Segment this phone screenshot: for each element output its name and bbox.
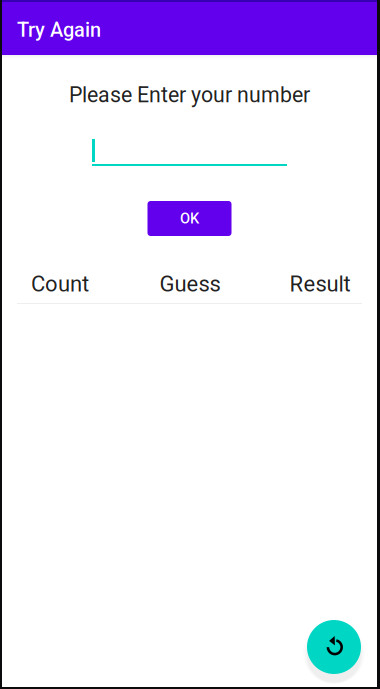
staticText: Please Enter your number <box>69 82 310 107</box>
staticText: Try Again <box>17 18 101 42</box>
staticText: Guess <box>159 271 220 297</box>
staticText: OK <box>180 210 199 227</box>
button[interactable]: Number entry field <box>92 139 287 166</box>
staticText: Result <box>289 271 350 297</box>
button[interactable]: Play again <box>302 620 366 684</box>
button[interactable]: OK <box>147 201 231 236</box>
staticText: Count <box>31 271 89 297</box>
